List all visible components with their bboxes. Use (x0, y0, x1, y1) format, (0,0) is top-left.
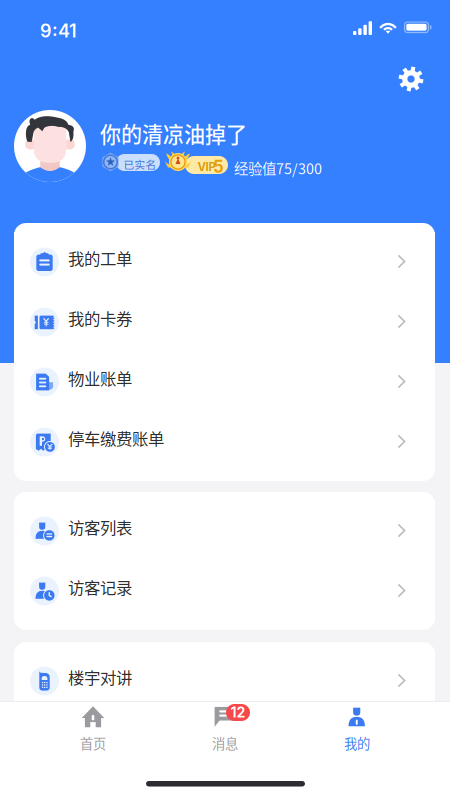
staticText: 我的 (344, 733, 370, 753)
button[interactable]: 停车缴费账单 (14, 412, 435, 472)
button[interactable]: 物业账单 (14, 352, 435, 412)
staticText: 访客记录 (68, 575, 132, 599)
button[interactable]: 我的 (291, 706, 423, 753)
staticText: 消息 (212, 733, 238, 753)
button[interactable]: 设备报修 (14, 711, 435, 771)
staticText: 物业账单 (68, 366, 132, 390)
staticText: 12 (230, 704, 245, 721)
button[interactable]: 首页 (27, 706, 159, 753)
staticText: 你的清凉油掉了 (100, 118, 247, 148)
staticText: 设备报修 (68, 725, 132, 749)
staticText: 已实名 (123, 156, 156, 172)
button[interactable]: 消息 (159, 706, 291, 753)
staticText: 5 (213, 156, 224, 177)
staticText: 访客列表 (68, 515, 132, 539)
button[interactable]: 我的卡券 (14, 292, 435, 352)
staticText: 楼宇对讲 (68, 665, 132, 689)
staticText: 我的工单 (68, 246, 132, 270)
staticText: 停车缴费账单 (68, 426, 164, 450)
staticText: VIP (197, 160, 215, 174)
button[interactable]: 访客列表 (14, 501, 435, 561)
staticText: 首页 (80, 733, 106, 753)
button[interactable]: 我的工单 (14, 232, 435, 292)
button[interactable]: 楼宇对讲 (14, 651, 435, 711)
staticText: 我的卡券 (68, 306, 132, 330)
button[interactable]: 访客记录 (14, 561, 435, 621)
staticText: 经验值75/300 (234, 157, 322, 178)
staticText: 9:41 (40, 20, 77, 42)
button[interactable]: Settings (389, 57, 433, 101)
